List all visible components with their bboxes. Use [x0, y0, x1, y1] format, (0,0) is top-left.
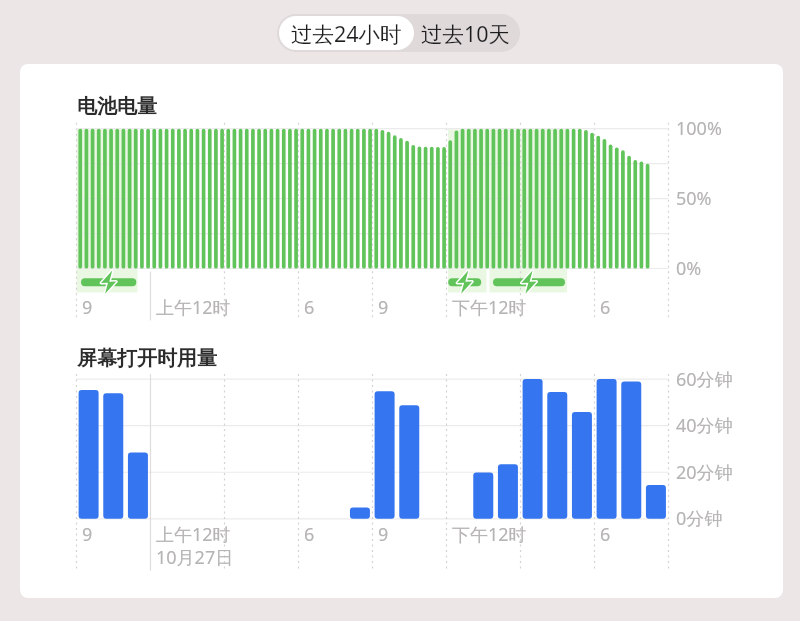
staticText: 6 — [600, 295, 611, 320]
staticText: 100% — [676, 116, 722, 141]
staticText: 0分钟 — [676, 506, 723, 531]
staticText: 6 — [304, 295, 315, 320]
staticText: 6 — [600, 522, 611, 547]
staticText: 9 — [82, 522, 93, 547]
staticText: 0% — [676, 256, 702, 281]
staticText: 9 — [378, 295, 389, 320]
staticText: 上午12时 — [156, 295, 231, 320]
staticText: 过去10天 — [421, 19, 511, 48]
staticText: 10月27日 — [156, 545, 234, 570]
staticText: 电池电量 — [77, 94, 157, 118]
staticText: 9 — [82, 295, 93, 320]
staticText: 40分钟 — [676, 413, 733, 438]
staticText: 屏幕打开时用量 — [77, 346, 217, 370]
staticText: 下午12时 — [452, 295, 527, 320]
staticText: 20分钟 — [676, 460, 733, 485]
staticText: 6 — [304, 522, 315, 547]
button[interactable]: 过去24小时 — [279, 16, 414, 50]
staticText: 9 — [378, 522, 389, 547]
staticText: 50% — [676, 186, 712, 211]
staticText: 60分钟 — [676, 367, 733, 392]
staticText: 下午12时 — [452, 522, 527, 547]
staticText: 过去24小时 — [291, 19, 402, 48]
button[interactable]: 过去10天 — [414, 16, 518, 50]
staticText: 上午12时 — [156, 522, 231, 547]
